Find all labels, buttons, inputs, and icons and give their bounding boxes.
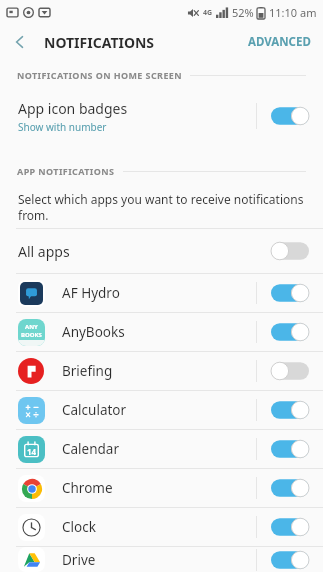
staticText: Chrome [62,479,256,497]
button[interactable]: On [271,517,309,537]
button[interactable]: Off [271,361,309,381]
staticText: Select which apps you want to receive no… [18,191,305,223]
staticText: NOTIFICATIONS [44,33,155,52]
staticText: AF Hydro [62,284,256,302]
staticText: 11:10 am [269,5,317,20]
button[interactable]: Calculator [0,391,323,429]
staticText: App icon badges [18,99,128,118]
button[interactable]: On [271,283,309,303]
button[interactable]: On [271,439,309,459]
staticText: 4G [203,8,213,18]
staticText: Show with number [18,120,107,134]
button[interactable]: 14 [0,430,323,468]
staticText: Drive [62,551,256,569]
button[interactable]: Off [271,241,309,261]
staticText: Calendar [62,440,256,458]
button[interactable]: ADVANCED [236,26,323,58]
button[interactable]: ANY [0,313,323,351]
button[interactable]: Drive [0,547,323,572]
staticText: Calculator [62,401,256,419]
button[interactable]: On [271,550,309,570]
staticText: ANY [25,323,38,331]
button[interactable]: Briefing [0,352,323,390]
button[interactable]: AF Hydro [0,274,323,312]
button[interactable]: All apps [0,229,323,273]
button[interactable]: Back [0,24,40,60]
button[interactable]: App icon badges [0,90,323,142]
button[interactable]: On [271,106,309,126]
staticText: APP NOTIFICATIONS [17,165,115,177]
staticText: BOOKS [21,331,42,339]
staticText: 52% [232,5,254,20]
staticText: Briefing [62,362,256,380]
staticText: ADVANCED [248,34,311,50]
staticText: AnyBooks [62,323,256,341]
staticText: 14 [27,446,37,457]
staticText: All apps [18,242,271,261]
staticText: Clock [62,518,256,536]
button[interactable]: On [271,400,309,420]
staticText: NOTIFICATIONS ON HOME SCREEN [17,69,182,81]
button[interactable]: Chrome [0,469,323,507]
button[interactable]: Clock [0,508,323,546]
button[interactable]: On [271,322,309,342]
button[interactable]: On [271,478,309,498]
